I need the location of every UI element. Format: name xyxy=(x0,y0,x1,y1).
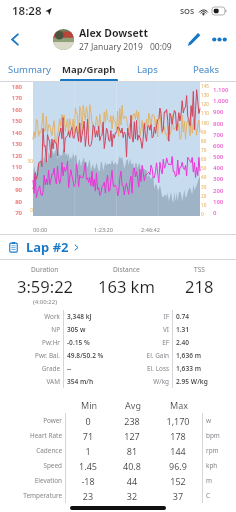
staticText: 144 xyxy=(154,445,202,457)
staticText: 50 xyxy=(201,165,212,171)
staticText: 3:59:22 xyxy=(17,275,74,297)
staticText: 600 xyxy=(213,142,236,150)
button[interactable]: Summary xyxy=(0,56,59,82)
staticText: Elevation xyxy=(2,476,62,485)
staticText: m xyxy=(206,476,232,485)
button[interactable]: Lap #2 xyxy=(0,235,236,259)
staticText: 00:09 xyxy=(150,41,172,53)
staticText: Work xyxy=(2,312,60,321)
staticText: 130 xyxy=(0,140,22,148)
staticText: 152 xyxy=(154,475,202,487)
staticText: 150 xyxy=(0,117,22,125)
staticText: 37 xyxy=(154,490,202,502)
button[interactable]: Laps xyxy=(118,56,177,82)
staticText: 2.40 xyxy=(176,338,230,347)
staticText: 354 m/h xyxy=(67,377,133,386)
staticText: 90 xyxy=(201,129,212,135)
staticText: 100 xyxy=(0,175,22,183)
staticText: -0.15 % xyxy=(67,338,133,347)
staticText: 30 xyxy=(201,184,212,190)
staticText: 170 xyxy=(0,94,22,102)
staticText: 90 xyxy=(0,186,22,194)
staticText: rpm xyxy=(206,446,232,455)
staticText: 127 xyxy=(110,430,154,442)
staticText: 0 xyxy=(66,415,110,427)
staticText: 1,000 xyxy=(213,97,236,105)
staticText: Temperature xyxy=(2,491,62,500)
staticText: 50 xyxy=(24,158,33,165)
staticText: Duration xyxy=(31,265,59,274)
staticText: EF xyxy=(133,338,169,347)
staticText: 178 xyxy=(154,430,202,442)
staticText: El. Loss xyxy=(133,364,169,373)
staticText: Power xyxy=(2,416,62,425)
staticText: 1:23:20 xyxy=(80,226,127,234)
staticText: 44 xyxy=(110,475,154,487)
staticText: 0 xyxy=(201,211,212,217)
staticText: 70 xyxy=(201,147,212,153)
staticText: Alex Dowsett xyxy=(79,26,148,40)
staticText: kph xyxy=(206,461,232,470)
staticText: bpm xyxy=(206,431,232,440)
staticText: Distance xyxy=(113,265,140,274)
staticText: Max xyxy=(155,399,203,411)
button[interactable]: Peaks xyxy=(177,56,236,82)
staticText: Cadence xyxy=(2,446,62,455)
staticText: 140 xyxy=(0,129,22,137)
staticText: -- xyxy=(67,364,133,373)
staticText: 300 xyxy=(213,175,236,183)
staticText: 200 xyxy=(213,187,236,195)
staticText: 40 xyxy=(201,174,212,180)
staticText: 238 xyxy=(110,415,154,427)
staticText: Grade xyxy=(2,364,60,373)
staticText: 0 xyxy=(213,209,236,217)
staticText: 0.74 xyxy=(176,312,230,321)
staticText: 120 xyxy=(201,101,212,107)
staticText: 3,348 kJ xyxy=(67,312,133,321)
staticText: 2.95 W/kg xyxy=(176,377,230,386)
staticText: 180 xyxy=(0,83,22,91)
button[interactable]: Edit xyxy=(180,26,207,53)
staticText: 49.8/50.2 % xyxy=(67,351,133,360)
staticText: 80 xyxy=(0,198,22,206)
staticText: 80 xyxy=(201,138,212,144)
staticText: -18 xyxy=(66,475,110,487)
staticText: 110 xyxy=(201,110,212,116)
staticText: Pwr. Bal. xyxy=(2,351,60,360)
staticText: 100 xyxy=(213,198,236,206)
staticText: 81 xyxy=(110,445,154,457)
staticText: 00:00 xyxy=(33,226,80,234)
button[interactable]: Map/Graph xyxy=(59,56,118,82)
button[interactable]: More options xyxy=(207,25,232,54)
staticText: 70 xyxy=(0,209,22,217)
staticText: 1 xyxy=(66,445,110,457)
staticText: 120 xyxy=(0,152,22,160)
staticText: 130 xyxy=(201,92,212,98)
staticText: 305 w xyxy=(67,325,133,334)
button[interactable]: Back xyxy=(0,24,30,54)
staticText: C xyxy=(206,491,232,500)
staticText: TSS xyxy=(194,265,205,274)
staticText: 1.45 xyxy=(66,460,110,472)
staticText: 145 xyxy=(201,83,212,89)
staticText: 96.9 xyxy=(154,460,202,472)
staticText: 23 xyxy=(66,490,110,502)
staticText: (4:00:22) xyxy=(33,298,57,306)
staticText: 163 km xyxy=(98,275,155,297)
staticText: 1.31 xyxy=(176,325,230,334)
staticText: 500 xyxy=(213,153,236,161)
staticText: 218 xyxy=(185,275,214,297)
staticText: 700 xyxy=(213,131,236,139)
staticText: Peaks xyxy=(193,63,220,76)
staticText: Heart Rate xyxy=(2,431,62,440)
staticText: Map/Graph xyxy=(62,63,116,76)
staticText: 20 xyxy=(201,193,212,199)
staticText: Laps xyxy=(137,63,158,76)
staticText: w xyxy=(206,416,232,425)
staticText: Summary xyxy=(8,63,51,76)
staticText: 160 xyxy=(0,106,22,114)
